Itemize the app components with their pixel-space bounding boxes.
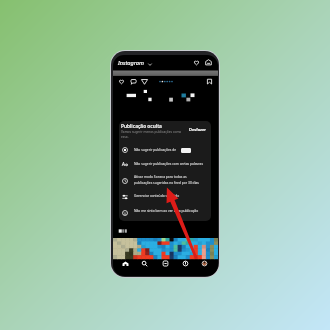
staticText: Publicação oculta <box>121 123 162 130</box>
button[interactable]: Gerenciar conteúdo sugerido <box>119 190 211 201</box>
staticText: Instagram <box>118 59 144 67</box>
button[interactable]: Profile <box>200 259 209 268</box>
staticText: Gerenciar conteúdo sugerido <box>134 193 180 197</box>
button[interactable]: Direct messages <box>205 59 212 66</box>
staticText: Vamos sugerir menos publicações como ess… <box>121 130 182 139</box>
button[interactable]: Ativar modo Soneca para todas as publica… <box>119 171 211 187</box>
button[interactable]: Comment <box>130 78 137 85</box>
button[interactable]: Like <box>118 78 125 85</box>
button[interactable]: Save <box>206 78 213 85</box>
button[interactable]: Reels <box>161 259 170 268</box>
button[interactable]: Instagram <box>118 59 144 67</box>
button[interactable]: Não me sinto bem ao ver essa publicação <box>119 205 211 216</box>
button[interactable]: Não sugerir publicações com certas palav… <box>119 158 211 169</box>
button[interactable]: Desfazer <box>189 127 208 134</box>
button[interactable]: Create <box>181 259 190 268</box>
staticText: Não sugerir publicações de <box>134 147 177 151</box>
button[interactable]: Share <box>141 78 148 85</box>
staticText: Desfazer <box>189 127 207 132</box>
button[interactable]: Search <box>140 259 149 268</box>
staticText: Ativar modo Soneca para todas as publica… <box>134 174 199 185</box>
button[interactable]: Notifications <box>193 59 200 66</box>
button[interactable]: Home <box>121 259 130 268</box>
staticText: Não sugerir publicações com certas palav… <box>134 161 204 165</box>
staticText: Não me sinto bem ao ver essa publicação <box>134 208 199 212</box>
button[interactable]: Não sugerir publicações de <box>119 144 211 155</box>
